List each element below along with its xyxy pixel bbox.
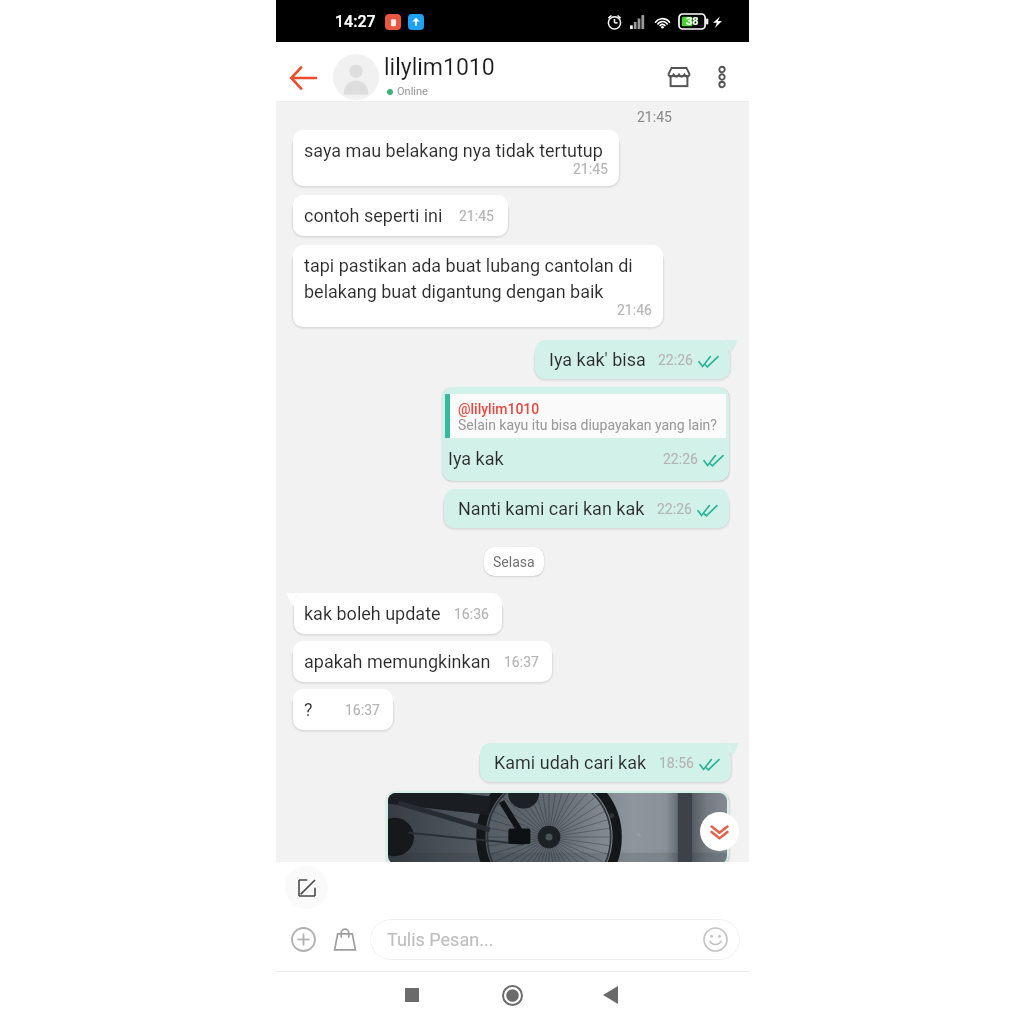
staticText: 21:46 <box>617 302 652 318</box>
staticText: 22:26 <box>663 451 698 467</box>
button[interactable]: Back <box>586 971 634 1019</box>
button[interactable]: Selasa <box>484 547 544 576</box>
button[interactable] <box>388 793 727 864</box>
staticText: 22:26 <box>657 501 692 517</box>
staticText: 22:26 <box>658 352 693 368</box>
button[interactable]: saya mau belakang nya tidak tertutup <box>293 130 619 186</box>
button[interactable]: More options <box>699 54 745 100</box>
staticText: @lilylim1010 <box>458 401 540 417</box>
button[interactable]: Kami udah cari kak <box>480 743 738 782</box>
staticText: Tulis Pesan... <box>387 929 494 950</box>
staticText: 21:45 <box>637 109 672 125</box>
staticText: Selasa <box>493 554 535 570</box>
staticText: apakah memungkinkan <box>304 651 491 672</box>
staticText: 21:45 <box>573 161 608 177</box>
button[interactable]: ? <box>293 689 393 730</box>
button[interactable] <box>333 54 379 100</box>
button[interactable]: kak boleh update <box>287 593 502 634</box>
staticText: saya mau belakang nya tidak tertutup <box>304 140 603 161</box>
staticText: Nanti kami cari kan kak <box>458 498 645 519</box>
staticText: ? <box>304 699 313 720</box>
staticText: 16:36 <box>454 606 489 622</box>
button[interactable]: Compose message <box>285 866 328 909</box>
button[interactable]: Shop products <box>325 919 365 959</box>
staticText: 14:27 <box>335 12 376 31</box>
button[interactable]: Shop <box>655 53 703 101</box>
button[interactable]: Nanti kami cari kan kak <box>444 489 729 528</box>
button[interactable]: Scroll to latest messages <box>700 812 739 851</box>
button[interactable]: Tulis Pesan... <box>370 919 740 960</box>
button[interactable]: Home <box>488 971 536 1019</box>
staticText: kak boleh update <box>304 603 441 624</box>
staticText: Iya kak <box>448 448 504 469</box>
staticText: Kami udah cari kak <box>494 752 647 773</box>
staticText: 21:45 <box>459 208 494 224</box>
staticText: Iya kak' bisa <box>549 349 646 370</box>
button[interactable]: Recent apps <box>388 971 436 1019</box>
button[interactable]: tapi pastikan ada buat lubang cantolan d… <box>293 245 663 327</box>
button[interactable]: apakah memungkinkan <box>293 641 552 682</box>
staticText: contoh seperti ini <box>304 205 443 226</box>
staticText: 16:37 <box>504 654 539 670</box>
button[interactable]: Iya kak' bisa <box>535 340 737 379</box>
staticText: tapi pastikan ada buat lubang cantolan d… <box>304 255 633 302</box>
staticText: 38 <box>686 15 699 28</box>
staticText: lilylim1010 <box>384 54 495 81</box>
button[interactable]: @lilylim1010 <box>442 387 729 481</box>
button[interactable]: Back <box>279 53 327 101</box>
staticText: 18:56 <box>659 755 694 771</box>
staticText: 16:37 <box>345 702 380 718</box>
button[interactable]: Add attachment <box>283 919 323 959</box>
button[interactable]: contoh seperti ini <box>293 195 508 236</box>
staticText: Selain kayu itu bisa diupayakan yang lai… <box>458 417 717 433</box>
staticText: Online <box>397 85 428 98</box>
